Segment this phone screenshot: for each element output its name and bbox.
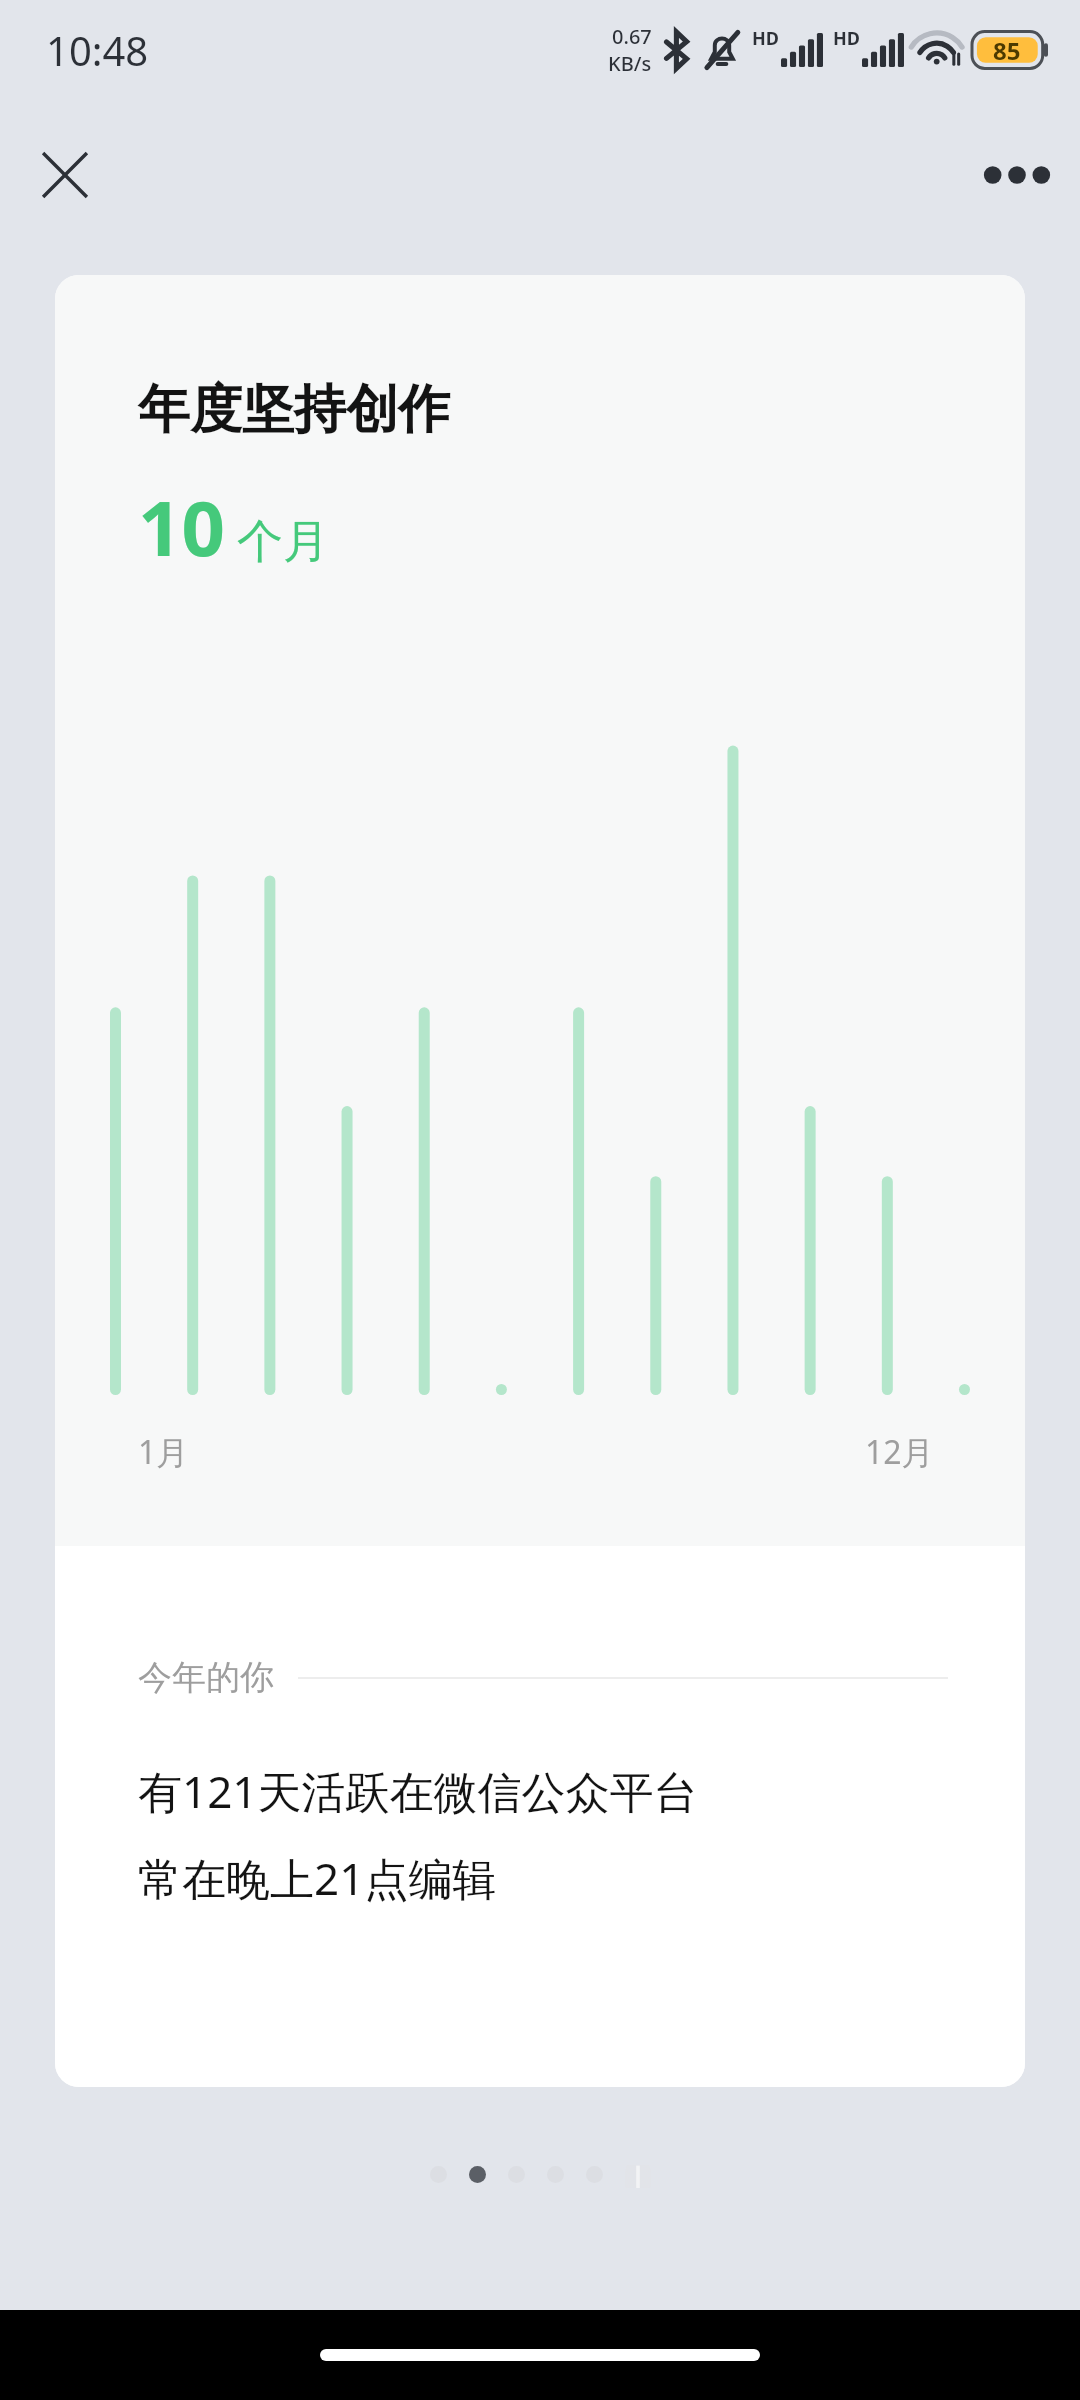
staticText: 个月 — [237, 513, 329, 571]
button[interactable]: 年度坚持创作 — [55, 275, 1025, 2087]
staticText: KB/s — [608, 50, 652, 77]
staticText: 1月 — [138, 1430, 189, 1474]
staticText: 85 — [993, 34, 1021, 67]
staticText: 12月 — [865, 1430, 934, 1474]
staticText: 常在晚上21点编辑 — [138, 1848, 497, 1908]
staticText: 0.67 — [612, 23, 652, 50]
button[interactable]: Close — [20, 130, 110, 220]
button[interactable]: More options — [972, 130, 1062, 220]
staticText: HD — [833, 26, 860, 51]
staticText: 10:48 — [46, 23, 149, 77]
staticText: 10 — [138, 475, 225, 579]
staticText: HD — [752, 26, 779, 51]
staticText: 今年的你 — [138, 1656, 274, 1699]
staticText: 年度坚持创作 — [138, 377, 450, 443]
staticText: 有121天活跃在微信公众平台 — [138, 1761, 698, 1821]
